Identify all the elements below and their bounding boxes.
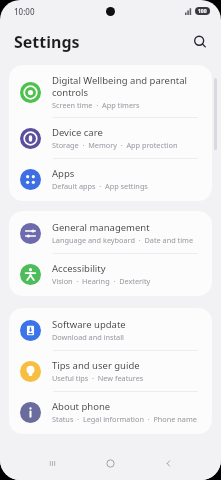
staticText: Settings — [14, 31, 80, 53]
button[interactable]: General management — [9, 213, 212, 253]
staticText: Accessibility — [52, 262, 106, 275]
staticText: About phone — [52, 400, 111, 413]
button[interactable]: Software update — [9, 310, 212, 350]
button[interactable]: Back — [139, 446, 197, 480]
staticText: Useful tips · New features — [52, 373, 144, 383]
button[interactable]: Accessibility — [9, 254, 212, 294]
button[interactable]: Digital Wellbeing and parental controls — [9, 67, 212, 117]
staticText: Storage · Memory · App protection — [52, 140, 178, 150]
staticText: General management — [52, 221, 150, 234]
staticText: Screen time · App timers — [52, 100, 140, 110]
button[interactable]: Recents — [24, 446, 81, 480]
staticText: Default apps · App settings — [52, 181, 148, 191]
staticText: Digital Wellbeing and parental controls — [52, 74, 202, 99]
staticText: Device care — [52, 126, 103, 139]
staticText: Language and keyboard · Date and time — [52, 235, 193, 245]
button[interactable]: Tips and user guide — [9, 351, 212, 391]
button[interactable]: Home — [81, 446, 139, 480]
button[interactable]: Device care — [9, 118, 212, 158]
staticText: 100 — [198, 8, 207, 15]
staticText: Tips and user guide — [52, 359, 140, 372]
button[interactable]: Search — [187, 29, 213, 55]
button[interactable]: Apps — [9, 159, 212, 199]
staticText: Apps — [52, 167, 75, 180]
staticText: 10:00 — [14, 6, 35, 17]
staticText: Software update — [52, 318, 126, 331]
button[interactable]: About phone — [9, 392, 212, 432]
staticText: Status · Legal information · Phone name — [52, 414, 197, 424]
staticText: Vision · Hearing · Dexterity — [52, 276, 151, 286]
staticText: Download and install — [52, 332, 124, 342]
